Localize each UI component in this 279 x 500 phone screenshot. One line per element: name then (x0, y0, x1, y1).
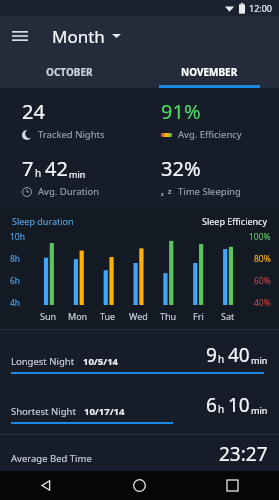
staticText: 6h (10, 275, 21, 287)
staticText: 80% (254, 253, 271, 265)
staticText: 10 (228, 392, 250, 418)
staticText: 91% (161, 98, 201, 125)
staticText: 40 (228, 342, 250, 368)
button[interactable]: Back (0, 471, 93, 500)
staticText: 4h (10, 297, 21, 309)
button[interactable]: Recent apps (186, 471, 279, 500)
staticText: h (218, 352, 225, 366)
staticText: 10/5/14 (83, 355, 119, 368)
button[interactable]: Longest Night (0, 334, 279, 384)
staticText: 8h (10, 253, 21, 265)
staticText: Longest Night (11, 355, 75, 368)
staticText: 10h (10, 231, 25, 243)
staticText: Tue (100, 310, 116, 322)
staticText: 32% (161, 155, 201, 182)
button[interactable]: Open navigation menu (0, 16, 40, 56)
staticText: OCTOBER (46, 65, 93, 79)
button[interactable]: 7 (0, 153, 139, 200)
staticText: 24 (22, 98, 45, 125)
staticText: 40% (254, 297, 271, 309)
staticText: Average Bed Time (11, 452, 92, 465)
button[interactable]: Home (93, 471, 186, 500)
staticText: 7 (22, 155, 34, 182)
staticText: Time Sleeping (178, 185, 241, 198)
staticText: min (251, 354, 268, 366)
staticText: Wed (129, 310, 148, 322)
staticText: Sun (40, 310, 57, 322)
staticText: 60% (254, 275, 271, 287)
staticText: 100% (249, 231, 271, 243)
staticText: Mon (68, 310, 88, 322)
staticText: Avg. Efficiency (178, 128, 242, 141)
staticText: 10/17/14 (84, 405, 125, 418)
staticText: Fri (193, 310, 204, 322)
staticText: 9 (206, 342, 217, 368)
button[interactable]: Month (48, 16, 125, 56)
staticText: Sleep Efficiency (202, 215, 267, 227)
button[interactable]: 32% (139, 153, 279, 200)
button[interactable]: 24 (0, 96, 139, 143)
staticText: Sleep duration (12, 215, 74, 227)
staticText: Avg. Duration (38, 185, 100, 198)
staticText: Month (52, 25, 105, 48)
staticText: 23:27 (219, 441, 268, 467)
staticText: Shortest Night (11, 405, 76, 418)
staticText: h (35, 166, 42, 180)
button[interactable]: OCTOBER (0, 56, 139, 88)
button[interactable]: NOVEMBER (139, 56, 279, 88)
staticText: min (251, 404, 268, 416)
staticText: Thu (160, 310, 177, 322)
button[interactable]: Average Bed Time (0, 435, 279, 471)
button[interactable]: Shortest Night (0, 384, 279, 434)
staticText: min (69, 168, 86, 180)
staticText: 42 (45, 155, 68, 182)
button[interactable]: 91% (139, 96, 279, 143)
staticText: z (161, 190, 164, 197)
staticText: NOVEMBER (181, 65, 238, 79)
staticText: Sat (221, 310, 235, 322)
staticText: h (218, 402, 225, 416)
staticText: 12:00 (249, 2, 273, 14)
staticText: 6 (206, 392, 217, 418)
staticText: Tracked Nights (38, 128, 105, 141)
staticText: z (168, 187, 172, 197)
